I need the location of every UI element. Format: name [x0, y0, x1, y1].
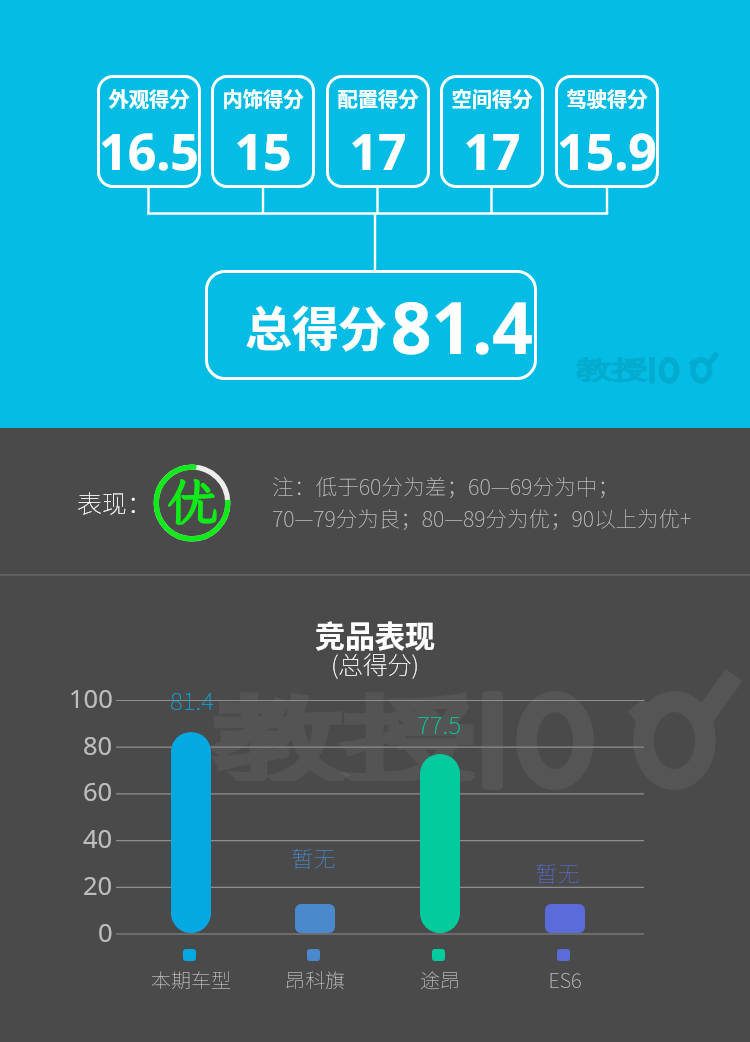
staticText: 77.5 [417, 706, 461, 741]
staticText: 17 [349, 117, 407, 185]
staticText: 竞品表现 [315, 612, 435, 655]
button[interactable]: 本期车型 [171, 732, 211, 933]
staticText: 15.9 [557, 117, 657, 185]
button[interactable] [440, 75, 544, 188]
staticText: 60 [83, 774, 113, 809]
staticText: 途昂 [420, 965, 460, 994]
button[interactable]: 昂科旗 [295, 904, 335, 933]
staticText: 80 [83, 728, 113, 763]
button[interactable]: Performance rating [153, 464, 231, 542]
staticText: 16.5 [99, 117, 199, 185]
button[interactable]: 途昂 [420, 754, 460, 933]
button[interactable]: ES6 [545, 904, 585, 933]
staticText: 40 [83, 821, 113, 856]
staticText: 注：低于60分为差；60—69分为中； [272, 470, 620, 501]
staticText: 17 [463, 117, 521, 185]
button[interactable] [326, 75, 430, 188]
staticText: 空间得分 [451, 83, 533, 112]
staticText: (总得分) [331, 646, 420, 681]
staticText: 100 [69, 681, 113, 716]
staticText: 81.4 [391, 278, 533, 375]
staticText: 内饰得分 [222, 83, 304, 112]
button[interactable] [555, 75, 659, 188]
staticText: 外观得分 [108, 83, 190, 112]
staticText: 暂无 [535, 856, 580, 888]
staticText: 81.4 [170, 682, 214, 717]
button[interactable] [205, 270, 537, 380]
staticText: 70—79分为良；80—89分为优；90以上为优+ [272, 502, 692, 533]
staticText: 暂无 [291, 841, 336, 873]
staticText: 表现： [77, 484, 153, 520]
staticText: ES6 [548, 965, 582, 994]
staticText: 0 [98, 915, 113, 950]
button[interactable] [211, 75, 315, 188]
staticText: 20 [83, 868, 113, 903]
staticText: 总得分 [245, 291, 386, 359]
staticText: 优 [167, 468, 217, 534]
staticText: 教授 [212, 682, 475, 781]
staticText: 配置得分 [337, 83, 419, 112]
staticText: 本期车型 [151, 965, 231, 994]
staticText: 15 [234, 117, 292, 185]
staticText: 教授 [576, 355, 647, 382]
staticText: 驾驶得分 [566, 83, 648, 112]
button[interactable] [97, 75, 201, 188]
staticText: 昂科旗 [285, 965, 345, 994]
